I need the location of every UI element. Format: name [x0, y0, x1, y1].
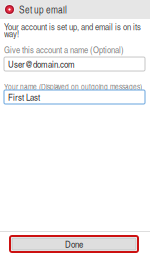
staticText: Your name (Displayed on outgoing message…	[4, 81, 142, 92]
staticText: Give this account a name (Optional)	[4, 43, 124, 56]
button[interactable]: Done	[10, 236, 138, 252]
staticText: First Last	[8, 90, 40, 104]
button[interactable]: First Last	[4, 90, 145, 104]
staticText: Set up email	[19, 3, 67, 16]
button[interactable]: User@domain.com	[4, 57, 145, 71]
staticText: way!	[4, 27, 19, 40]
staticText: Your account is set up, and email is on …	[4, 20, 141, 33]
staticText: User@domain.com	[8, 57, 75, 71]
staticText: Done	[65, 237, 83, 251]
